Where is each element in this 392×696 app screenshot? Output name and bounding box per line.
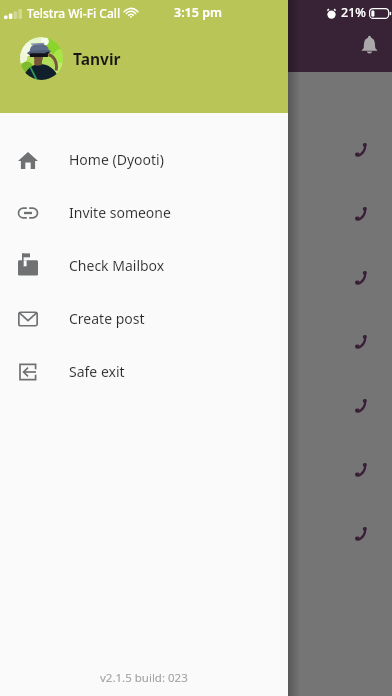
button[interactable]: Call xyxy=(350,203,372,225)
staticText: Home (Dyooti) xyxy=(69,150,164,169)
staticText: Check Mailbox xyxy=(69,256,165,275)
button[interactable]: Call xyxy=(0,438,392,502)
button[interactable]: Call xyxy=(0,182,392,246)
staticText: 3:15 pm xyxy=(174,4,222,21)
button[interactable]: Invite someone xyxy=(0,186,288,239)
staticText: Safe exit xyxy=(69,362,125,381)
button[interactable]: Home (Dyooti) xyxy=(0,133,288,186)
button[interactable]: Call xyxy=(0,310,392,374)
button[interactable]: Call xyxy=(350,331,372,353)
button[interactable]: Call xyxy=(0,374,392,438)
button[interactable]: Call xyxy=(350,459,372,481)
button[interactable]: Create post xyxy=(0,292,288,345)
button[interactable]: Safe exit xyxy=(0,345,288,398)
button[interactable]: Notifications xyxy=(347,22,391,66)
button[interactable]: Call xyxy=(0,118,392,182)
button[interactable] xyxy=(0,72,392,696)
button[interactable]: Call xyxy=(350,523,372,545)
button[interactable]: Call xyxy=(350,267,372,289)
staticText: Tanvir xyxy=(73,48,121,69)
button[interactable]: Call xyxy=(350,395,372,417)
staticText: Invite someone xyxy=(69,203,171,222)
button[interactable]: Call xyxy=(0,246,392,310)
button[interactable]: Call xyxy=(350,139,372,161)
staticText: Telstra Wi-Fi Call xyxy=(27,5,121,21)
button[interactable]: Check Mailbox xyxy=(0,239,288,292)
button[interactable]: Call xyxy=(0,502,392,566)
staticText: 21% xyxy=(341,4,366,21)
staticText: v2.1.5 build: 023 xyxy=(100,670,188,686)
staticText: Create post xyxy=(69,309,145,328)
